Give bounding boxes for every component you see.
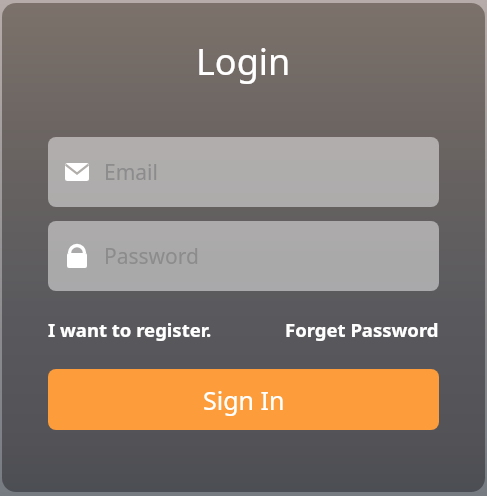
button[interactable]: Forget Password (285, 317, 439, 342)
button[interactable]: Email (48, 137, 439, 207)
button[interactable]: Sign In (48, 369, 439, 430)
button[interactable]: Password (48, 221, 439, 291)
staticText: Login (196, 37, 291, 86)
staticText: Forget Password (285, 317, 439, 342)
button[interactable]: I want to register. (48, 317, 212, 342)
staticText: Sign In (203, 383, 285, 417)
staticText: Password (104, 242, 199, 271)
staticText: I want to register. (48, 317, 212, 342)
staticText: Email (104, 158, 158, 187)
